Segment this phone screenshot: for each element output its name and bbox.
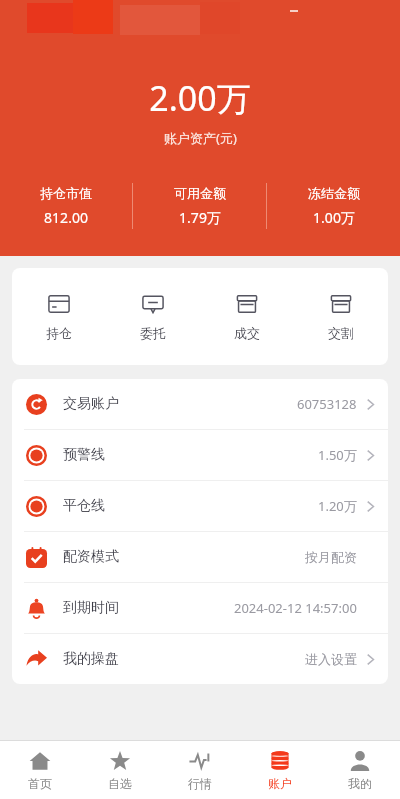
staticText: 按月配资 xyxy=(305,549,357,565)
staticText: 持仓市值 xyxy=(40,185,92,201)
staticText: 我的操盘 xyxy=(63,650,119,668)
staticText: 1.00万 xyxy=(313,208,355,227)
staticText: 成交 xyxy=(234,325,260,341)
button[interactable]: 行情 xyxy=(160,746,240,795)
staticText: 账户 xyxy=(268,776,292,791)
staticText: 进入设置 xyxy=(305,651,357,667)
button[interactable]: 平仓线 xyxy=(12,481,388,531)
button[interactable]: 我的操盘 xyxy=(12,634,388,684)
staticText: 委托 xyxy=(140,325,166,341)
button[interactable]: 自选 xyxy=(80,746,160,795)
staticText: 我的 xyxy=(348,776,372,791)
staticText: 60753128 xyxy=(297,395,357,413)
staticText: 配资模式 xyxy=(63,548,119,566)
staticText: 行情 xyxy=(188,776,212,791)
staticText: 可用金额 xyxy=(174,185,226,201)
staticText: 2024-02-12 14:57:00 xyxy=(234,599,357,617)
staticText: 1.20万 xyxy=(318,497,357,515)
staticText: 交割 xyxy=(328,325,354,341)
staticText: 账户资产(元) xyxy=(164,129,237,147)
staticText: 冻结金额 xyxy=(308,185,360,201)
staticText: 1.50万 xyxy=(318,446,357,464)
button[interactable]: 首页 xyxy=(0,746,80,795)
button[interactable]: 委托 xyxy=(106,288,200,345)
button[interactable]: 到期时间 xyxy=(12,583,388,633)
button[interactable]: 配资模式 xyxy=(12,532,388,582)
staticText: 首页 xyxy=(28,776,52,791)
staticText: 到期时间 xyxy=(63,599,119,617)
button[interactable]: 交易账户 xyxy=(12,379,388,429)
button[interactable]: 持仓 xyxy=(12,288,106,345)
staticText: 自选 xyxy=(108,776,132,791)
button[interactable]: 成交 xyxy=(200,288,294,345)
staticText: 交易账户 xyxy=(63,395,119,413)
staticText: 812.00 xyxy=(44,208,88,227)
staticText: 平仓线 xyxy=(63,497,105,515)
button[interactable]: 我的 xyxy=(320,746,400,795)
staticText: 2.00万 xyxy=(149,75,251,121)
staticText: 1.79万 xyxy=(179,208,221,227)
button[interactable]: 账户 xyxy=(240,746,320,795)
staticText: 持仓 xyxy=(46,325,72,341)
staticText: 预警线 xyxy=(63,446,105,464)
button[interactable]: 交割 xyxy=(294,288,388,345)
button[interactable]: 预警线 xyxy=(12,430,388,480)
